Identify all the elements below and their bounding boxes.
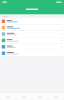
button[interactable] (0, 25, 64, 31)
button[interactable] (0, 18, 64, 25)
button[interactable]: Tab (48, 93, 64, 100)
button[interactable] (0, 37, 64, 44)
button[interactable]: Tab (16, 93, 32, 100)
button[interactable] (0, 50, 64, 57)
button[interactable] (0, 44, 64, 50)
button[interactable]: Tab (32, 93, 48, 100)
button[interactable] (0, 31, 64, 37)
button[interactable]: Tab (0, 93, 16, 100)
